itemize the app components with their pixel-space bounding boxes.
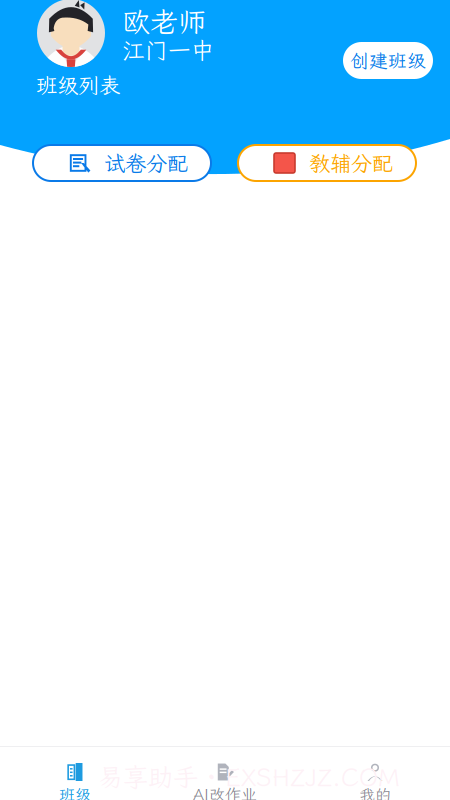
staticText: 班级列表 xyxy=(36,71,120,99)
button[interactable]: 创建班级 xyxy=(343,42,433,79)
staticText: 易享助手 · EXSHZJZ.COM xyxy=(98,760,400,793)
staticText: 我的 xyxy=(359,784,391,800)
staticText: 江门一中 xyxy=(122,35,214,65)
staticText: 班级 xyxy=(59,784,91,800)
staticText: 创建班级 xyxy=(350,48,426,73)
button[interactable]: 试卷分配 xyxy=(33,145,211,181)
button[interactable]: 教辅分配 xyxy=(238,145,416,181)
staticText: 教辅分配 xyxy=(309,149,393,177)
button[interactable]: AI改作业 xyxy=(150,747,300,800)
button[interactable]: 我的 xyxy=(300,747,450,800)
button[interactable]: 班级 xyxy=(0,747,150,800)
staticText: 试卷分配 xyxy=(104,149,188,177)
staticText: 欧老师 xyxy=(122,3,206,40)
staticText: AI改作业 xyxy=(193,784,257,800)
